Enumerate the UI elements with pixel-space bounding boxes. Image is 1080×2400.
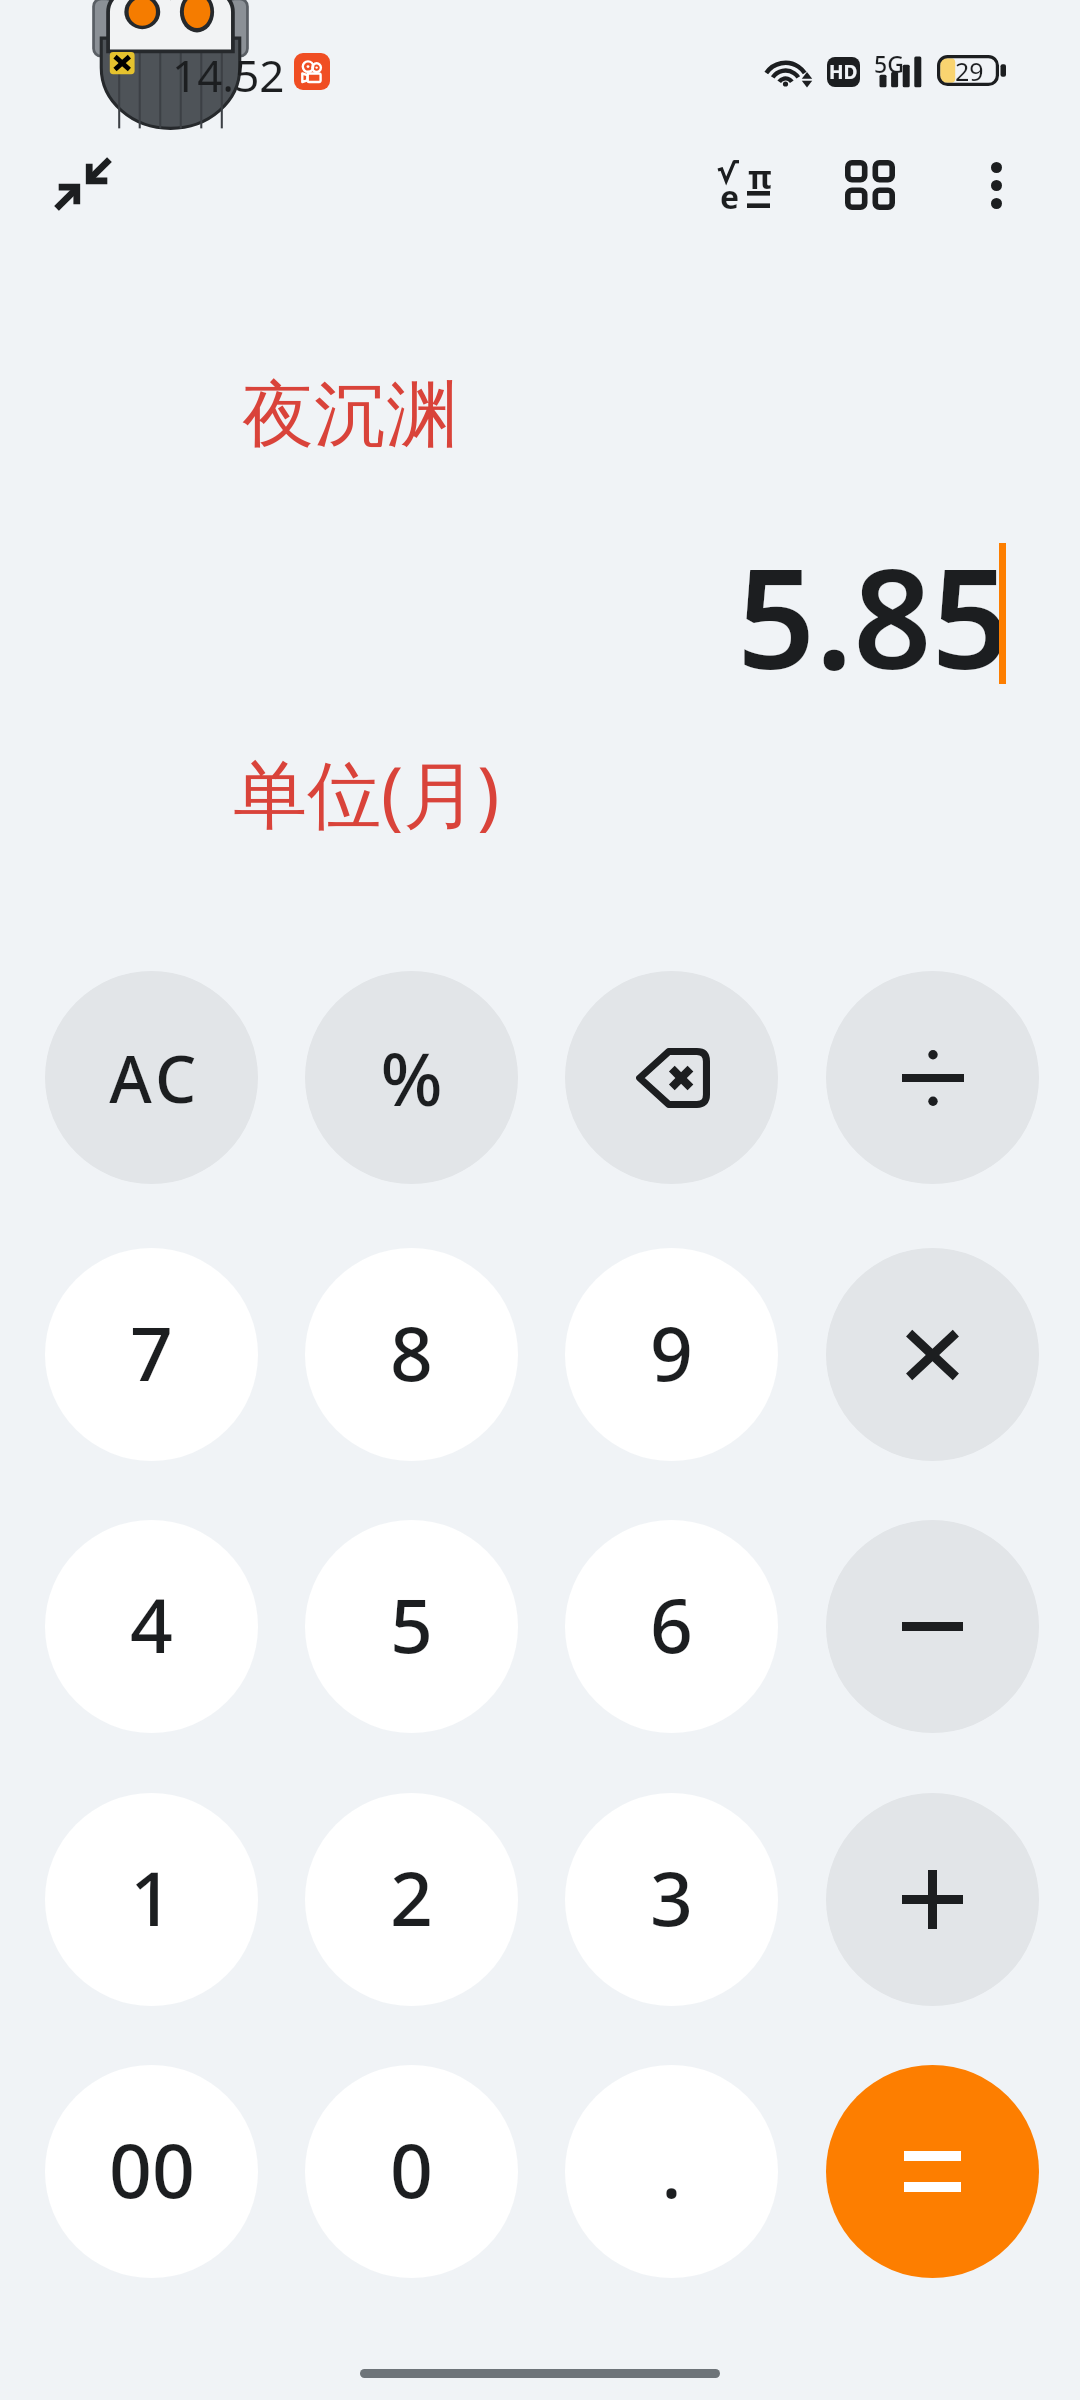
button[interactable]: Converters	[815, 140, 925, 230]
staticText: 14.52	[172, 45, 285, 105]
button[interactable]: 1	[45, 1793, 258, 2006]
button[interactable]: 0	[305, 2065, 518, 2278]
button[interactable]: Subtract	[826, 1520, 1039, 1733]
button[interactable]: 4	[45, 1520, 258, 1733]
button[interactable]: Divide	[826, 971, 1039, 1184]
button[interactable]: Equals	[826, 2065, 1039, 2278]
staticText: 4	[130, 1573, 173, 1675]
button[interactable]: .	[565, 2065, 778, 2278]
staticText: 9	[650, 1301, 693, 1403]
staticText: HD	[829, 59, 858, 85]
staticText: 0	[390, 2118, 433, 2220]
button[interactable]: %	[305, 971, 518, 1184]
staticText: 夜沉渊	[242, 370, 458, 461]
staticText: 7	[130, 1301, 173, 1403]
staticText: 8	[390, 1301, 433, 1403]
staticText: 5G	[874, 48, 904, 79]
button[interactable]: Delete	[565, 971, 778, 1184]
staticText: %	[380, 1028, 443, 1127]
button[interactable]: Scientific mode	[688, 137, 799, 232]
staticText: .	[661, 2118, 682, 2220]
button[interactable]: More options	[946, 140, 1046, 230]
button[interactable]: 8	[305, 1248, 518, 1461]
staticText: 1	[130, 1846, 173, 1948]
button[interactable]: 6	[565, 1520, 778, 1733]
button[interactable]: 9	[565, 1248, 778, 1461]
staticText: 29	[955, 54, 984, 85]
staticText: π	[748, 155, 772, 199]
staticText: 5	[390, 1573, 433, 1675]
staticText: 00	[109, 2118, 195, 2220]
button[interactable]: 3	[565, 1793, 778, 2006]
button[interactable]: 00	[45, 2065, 258, 2278]
button[interactable]: 5	[305, 1520, 518, 1733]
button[interactable]: AC	[45, 971, 258, 1184]
staticText: 2	[390, 1846, 433, 1948]
button[interactable]: 7	[45, 1248, 258, 1461]
button[interactable]: 2	[305, 1793, 518, 2006]
staticText: 3	[650, 1846, 693, 1948]
staticText: e	[720, 175, 740, 219]
staticText: 单位(月)	[233, 742, 500, 843]
button[interactable]: Collapse	[43, 144, 123, 224]
staticText: 6	[650, 1573, 693, 1675]
staticText: 5.85	[737, 523, 1010, 710]
button[interactable]: Add	[826, 1793, 1039, 2006]
button[interactable]: Multiply	[826, 1248, 1039, 1461]
staticText: AC	[109, 1034, 201, 1123]
